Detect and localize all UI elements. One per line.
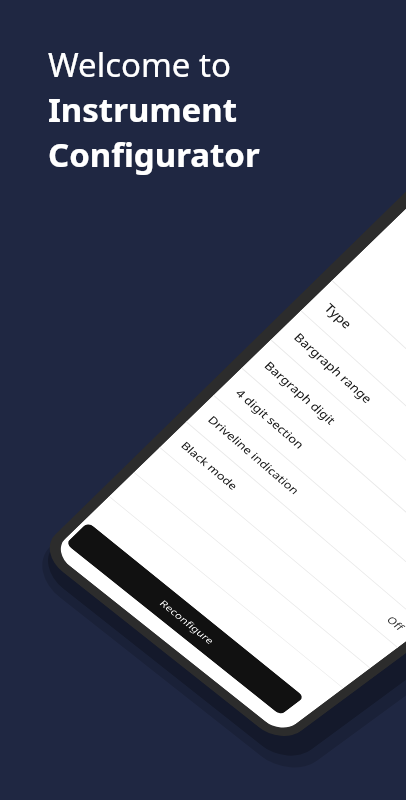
staticText: Configurator: [48, 132, 260, 177]
staticText: Welcome to: [48, 42, 231, 87]
button[interactable]: Driveline indication: [186, 395, 406, 626]
button[interactable]: Black mode: [160, 422, 406, 647]
button[interactable]: Reconfigure: [65, 522, 304, 715]
staticText: Type: [321, 300, 356, 332]
staticText: Bargraph digit: [261, 358, 340, 428]
button[interactable]: Bargraph digit: [242, 340, 406, 582]
staticText: Black mode: [178, 438, 242, 493]
staticText: Instrument: [48, 87, 238, 132]
button[interactable]: Type: [301, 281, 406, 535]
staticText: 4 digit section: [232, 385, 308, 452]
staticText: Bargraph range: [290, 329, 376, 407]
staticText: Driveline indication: [205, 412, 303, 497]
button[interactable]: 4 digit section: [214, 368, 406, 604]
staticText: Off: [383, 613, 406, 633]
staticText: Reconfigure: [157, 597, 217, 646]
button[interactable]: Bargraph range: [271, 311, 406, 558]
